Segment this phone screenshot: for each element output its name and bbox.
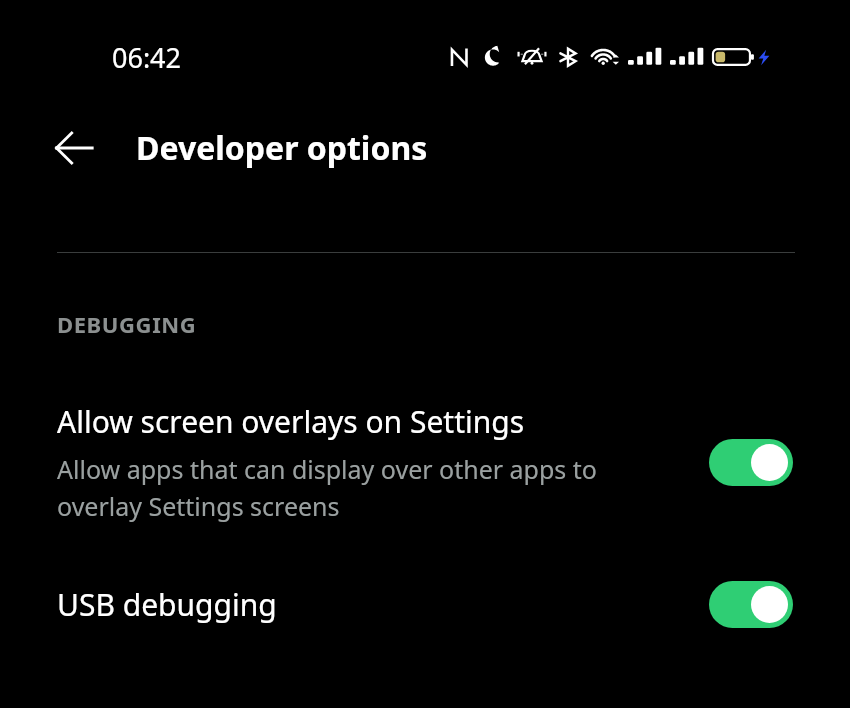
staticText: 06:42	[112, 39, 182, 76]
button[interactable]: Toggle on	[709, 581, 793, 628]
staticText: Allow apps that can display over other a…	[57, 452, 669, 523]
staticText: DEBUGGING	[57, 309, 197, 339]
staticText: Developer options	[136, 126, 428, 170]
button[interactable]: Toggle on	[709, 439, 793, 486]
button[interactable]: USB debugging	[0, 581, 850, 628]
staticText: USB debugging	[57, 584, 277, 625]
button[interactable]: Back	[44, 118, 104, 178]
staticText: Allow screen overlays on Settings	[57, 401, 525, 442]
button[interactable]: Allow screen overlays on Settings	[0, 401, 850, 523]
